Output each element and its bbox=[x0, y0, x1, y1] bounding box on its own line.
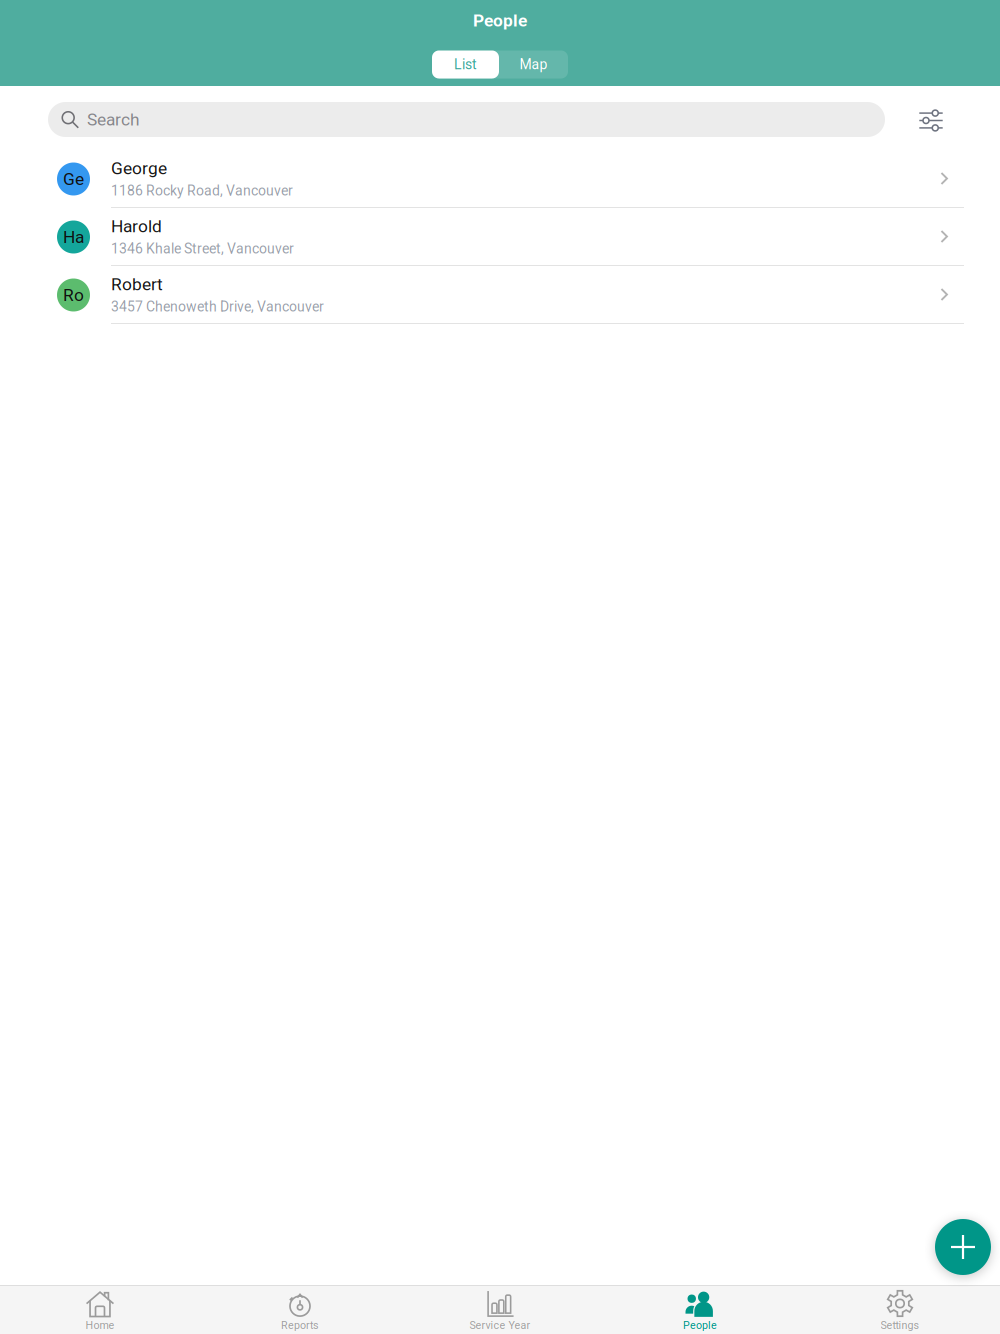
button[interactable]: Add person bbox=[935, 1219, 991, 1275]
staticText: George bbox=[111, 158, 167, 178]
button[interactable]: Settings bbox=[800, 1285, 1000, 1334]
staticText: 1346 Khale Street, Vancouver bbox=[111, 240, 294, 257]
button[interactable]: Filter bbox=[903, 97, 959, 141]
staticText: Ge bbox=[63, 169, 84, 189]
staticText: List bbox=[454, 56, 477, 73]
staticText: Home bbox=[85, 1319, 114, 1331]
staticText: Map bbox=[519, 56, 547, 73]
staticText: People bbox=[683, 1319, 717, 1331]
staticText: Settings bbox=[880, 1319, 919, 1331]
button[interactable]: Service Year bbox=[400, 1285, 600, 1334]
staticText: People bbox=[473, 10, 527, 31]
staticText: 3457 Chenoweth Drive, Vancouver bbox=[111, 298, 324, 315]
staticText: Harold bbox=[111, 216, 162, 236]
button[interactable]: Ge bbox=[0, 150, 1000, 208]
staticText: 1186 Rocky Road, Vancouver bbox=[111, 182, 293, 199]
staticText: Search bbox=[87, 109, 140, 130]
staticText: Ro bbox=[63, 285, 84, 305]
button[interactable]: Map bbox=[499, 50, 568, 78]
button[interactable]: Home bbox=[0, 1285, 200, 1334]
button[interactable]: Reports bbox=[200, 1285, 400, 1334]
button[interactable]: Ha bbox=[0, 208, 1000, 266]
staticText: Reports bbox=[281, 1319, 319, 1331]
staticText: Service Year bbox=[469, 1319, 530, 1331]
button[interactable]: Ro bbox=[0, 266, 1000, 324]
staticText: Ha bbox=[63, 227, 84, 247]
staticText: Robert bbox=[111, 274, 163, 294]
button[interactable]: People bbox=[600, 1285, 800, 1334]
button[interactable]: List bbox=[432, 50, 499, 78]
